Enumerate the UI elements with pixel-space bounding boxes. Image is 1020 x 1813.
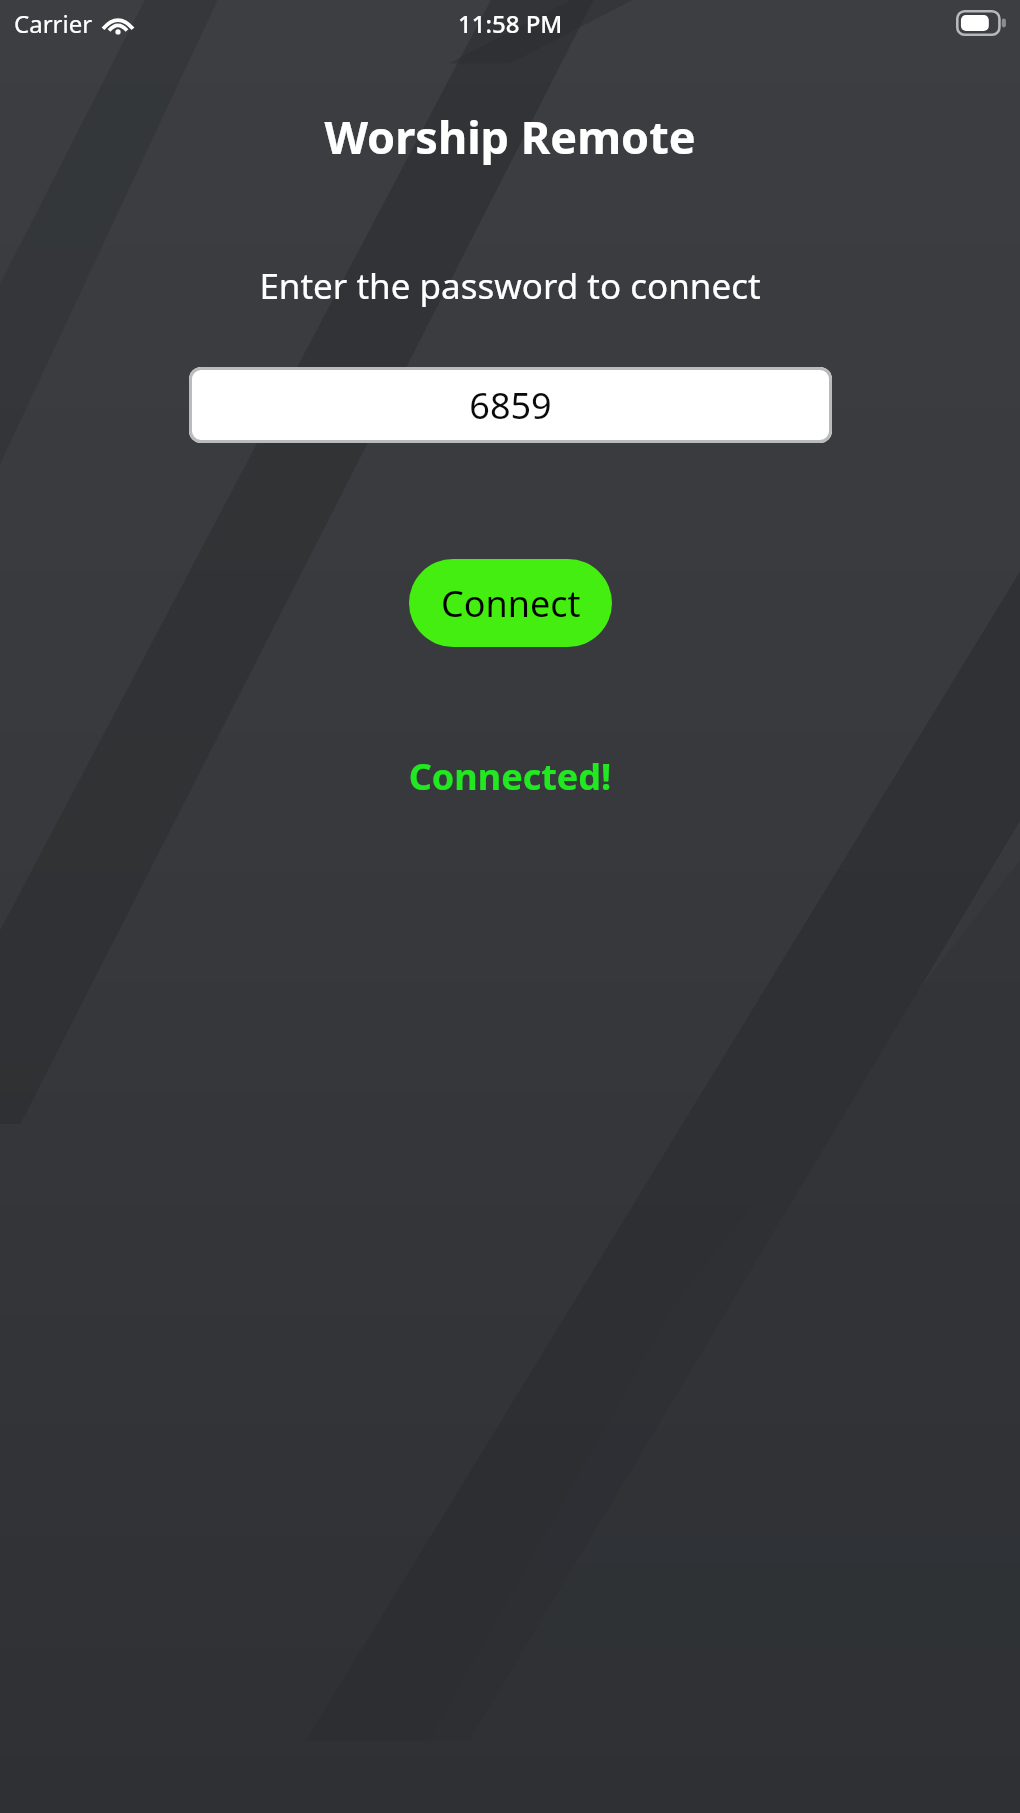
other: Battery <box>956 10 1008 36</box>
staticText: Carrier <box>14 7 93 40</box>
button[interactable]: Connect <box>409 559 612 647</box>
staticText: Enter the password to connect <box>0 262 1020 310</box>
other: Wi-Fi signal <box>103 13 133 35</box>
button[interactable]: 6859 <box>189 367 832 443</box>
staticText: 6859 <box>469 381 552 430</box>
staticText: 11:58 PM <box>458 7 563 40</box>
staticText: Connected! <box>0 752 1020 801</box>
staticText: Connect <box>441 579 581 628</box>
staticText: Worship Remote <box>0 106 1020 167</box>
